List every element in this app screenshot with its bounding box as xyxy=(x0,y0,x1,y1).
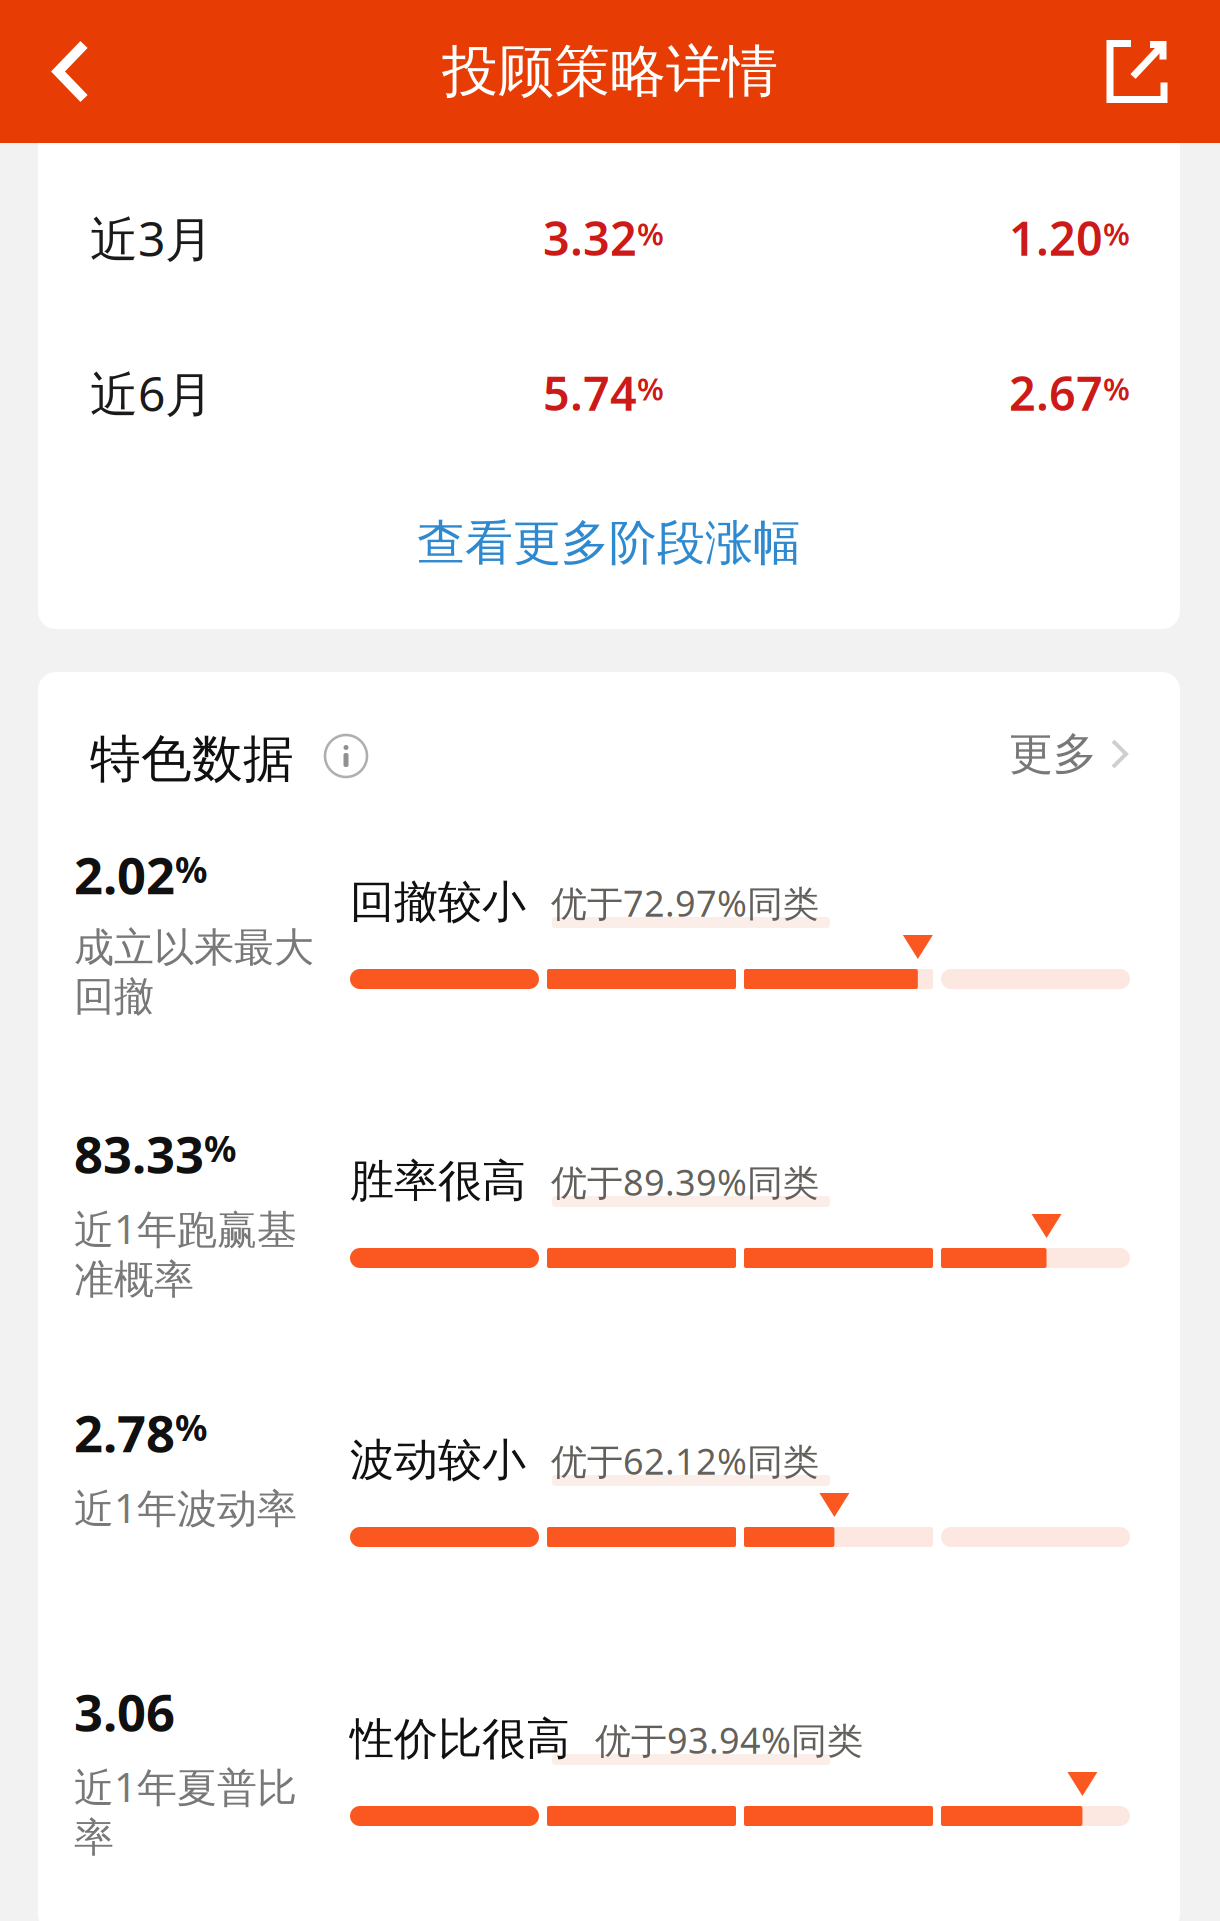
staticText: % xyxy=(175,845,207,893)
staticText: 性价比很高 xyxy=(350,1712,570,1766)
button[interactable]: 查看更多阶段涨幅 xyxy=(38,498,1180,588)
staticText: 3.32 xyxy=(543,207,637,269)
staticText: 胜率很高 xyxy=(350,1154,526,1208)
staticText: 波动较小 xyxy=(350,1433,526,1487)
staticText: 3.06 xyxy=(74,1678,175,1745)
staticText: 83.33 xyxy=(74,1120,204,1187)
staticText: 近6月 xyxy=(90,361,213,425)
staticText: 优于62.12%同类 xyxy=(551,1437,819,1485)
staticText: 近1年波动率 xyxy=(74,1481,297,1534)
staticText: % xyxy=(637,213,664,254)
staticText: % xyxy=(1103,368,1130,409)
staticText: 更多 xyxy=(1009,727,1097,781)
staticText: 5.74 xyxy=(543,362,637,424)
button[interactable]: 更多 xyxy=(90,728,1128,780)
button[interactable]: 返回 xyxy=(12,0,130,143)
staticText: 查看更多阶段涨幅 xyxy=(417,513,801,572)
staticText: % xyxy=(175,1403,207,1451)
staticText: 优于72.97%同类 xyxy=(551,879,819,927)
staticText: % xyxy=(637,368,664,409)
staticText: 1.20 xyxy=(1009,207,1103,269)
staticText: 近1年夏普比率 xyxy=(74,1760,297,1862)
staticText: 回撤较小 xyxy=(350,875,526,929)
staticText: 近1年跑赢基准概率 xyxy=(74,1202,297,1304)
staticText: 2.67 xyxy=(1009,362,1103,424)
staticText: 近3月 xyxy=(90,206,213,270)
staticText: 2.02 xyxy=(74,841,175,908)
staticText: 优于93.94%同类 xyxy=(595,1716,863,1764)
staticText: 2.78 xyxy=(74,1399,175,1466)
staticText: % xyxy=(204,1124,236,1172)
staticText: % xyxy=(1103,213,1130,254)
staticText: 投顾策略详情 xyxy=(442,37,778,106)
staticText: 优于89.39%同类 xyxy=(551,1158,819,1206)
staticText: 特色数据 xyxy=(90,728,294,790)
staticText: 成立以来最大回撤 xyxy=(74,923,314,1021)
button[interactable]: 分享 xyxy=(1075,0,1199,143)
